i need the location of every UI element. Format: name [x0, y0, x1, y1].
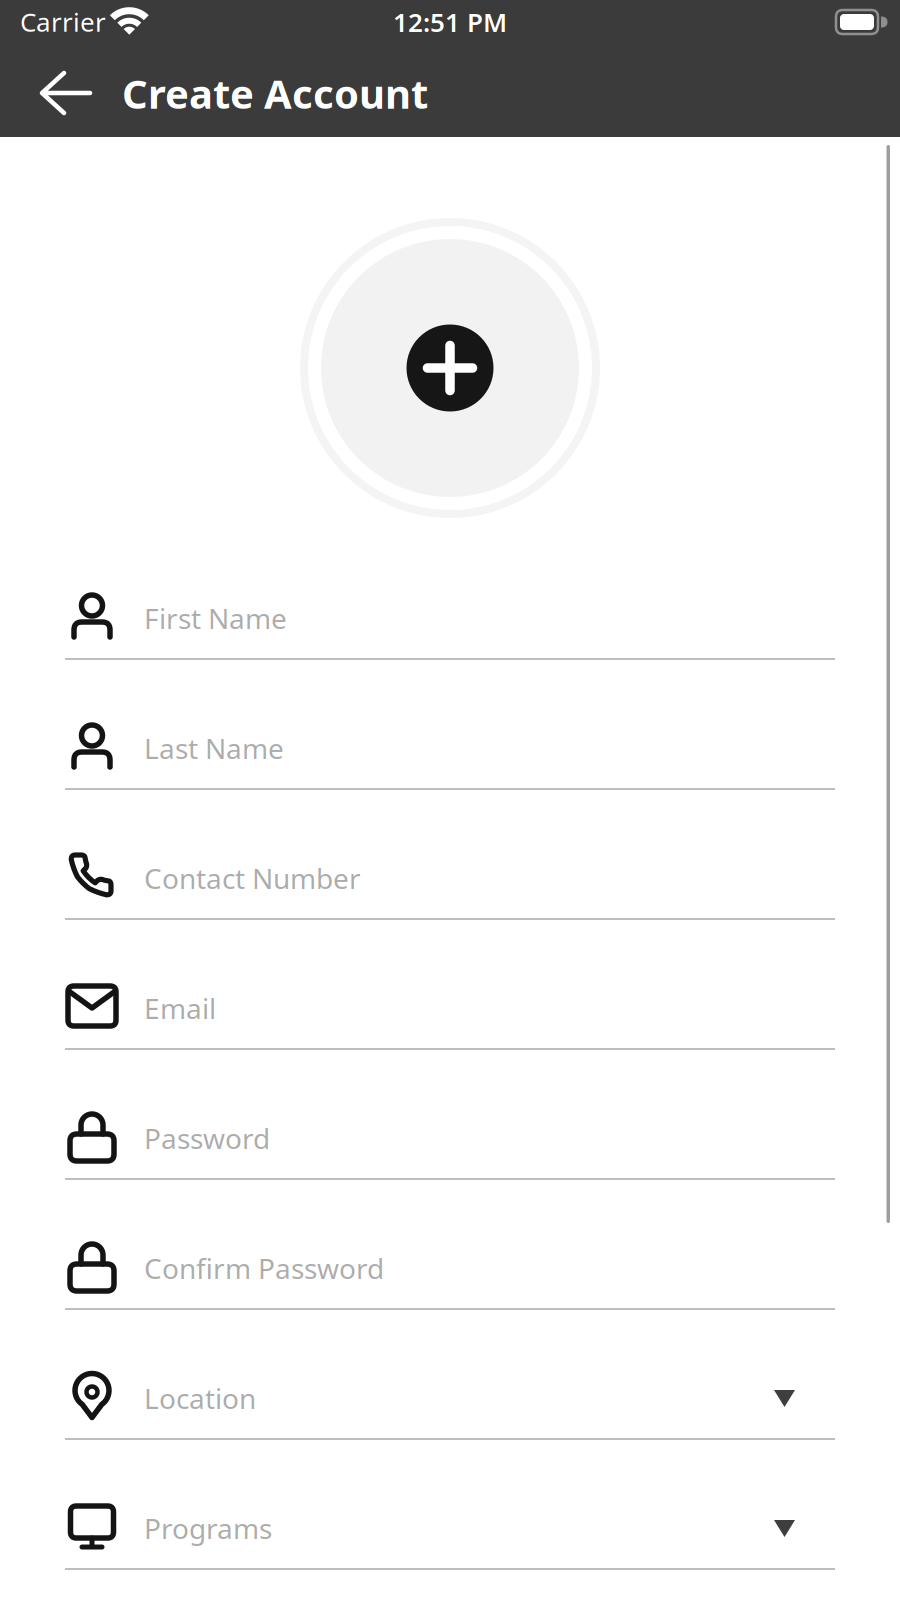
staticText: Email: [144, 989, 216, 1027]
button[interactable]: Password: [65, 1092, 835, 1182]
staticText: Programs: [144, 1509, 272, 1547]
staticText: 12:51 PM: [393, 4, 507, 40]
staticText: Password: [144, 1119, 270, 1157]
button[interactable]: Contact Number: [65, 832, 835, 922]
button[interactable]: Location: [65, 1352, 835, 1442]
button[interactable]: Add photo: [299, 217, 601, 519]
staticText: Create Account: [122, 66, 428, 120]
button[interactable]: Programs: [65, 1482, 835, 1572]
button[interactable]: Back: [20, 72, 112, 114]
staticText: Carrier: [20, 4, 106, 39]
button[interactable]: First Name: [65, 572, 835, 662]
staticText: Confirm Password: [144, 1249, 384, 1287]
button[interactable]: Email: [65, 962, 835, 1052]
staticText: Last Name: [144, 729, 284, 767]
staticText: Contact Number: [144, 859, 361, 897]
staticText: First Name: [144, 599, 287, 637]
button[interactable]: Last Name: [65, 702, 835, 792]
button[interactable]: Confirm Password: [65, 1222, 835, 1312]
staticText: Location: [144, 1379, 256, 1417]
